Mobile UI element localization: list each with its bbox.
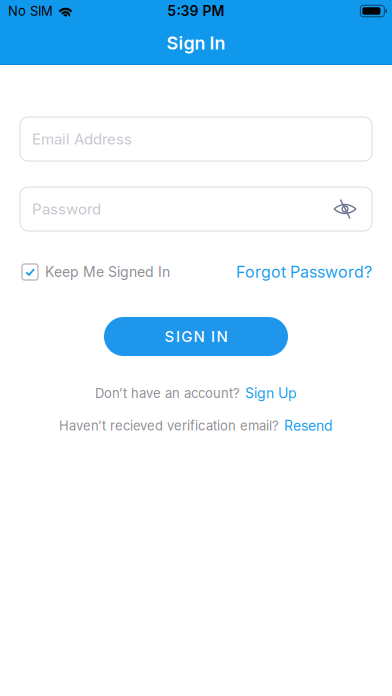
staticText: Haven’t recieved verification email?: [59, 418, 279, 433]
staticText: Don’t have an account?: [95, 386, 240, 401]
staticText: Password: [32, 200, 101, 218]
staticText: Resend: [284, 417, 333, 434]
staticText: No SIM: [8, 3, 53, 19]
button[interactable]: Forgot Password?: [236, 263, 372, 281]
staticText: 5:39 PM: [167, 3, 224, 19]
button[interactable]: Password: [20, 187, 372, 231]
staticText: Keep Me Signed In: [45, 264, 170, 280]
button[interactable]: Sign Up: [245, 385, 297, 401]
staticText: Forgot Password?: [236, 263, 372, 281]
staticText: Sign Up: [245, 385, 297, 401]
button[interactable]: Resend: [284, 417, 333, 434]
staticText: Email Address: [32, 130, 132, 148]
staticText: Sign In: [166, 32, 225, 54]
button[interactable]: Keep Me Signed In: [22, 264, 170, 280]
button[interactable]: SIGN IN: [104, 317, 288, 356]
staticText: SIGN IN: [165, 328, 227, 345]
button[interactable]: Show password: [330, 194, 360, 224]
button[interactable]: Email Address: [20, 117, 372, 161]
